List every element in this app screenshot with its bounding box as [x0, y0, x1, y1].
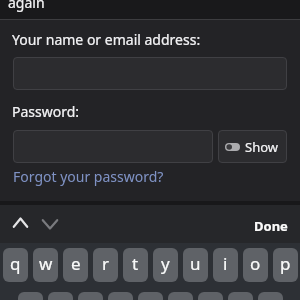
button[interactable] [138, 292, 163, 300]
button[interactable] [258, 292, 283, 300]
staticText: y [161, 252, 170, 275]
staticText: t [132, 252, 139, 275]
button[interactable] [13, 130, 213, 163]
button[interactable] [198, 292, 223, 300]
button[interactable] [18, 292, 43, 300]
button[interactable] [228, 292, 253, 300]
staticText: w [39, 252, 53, 275]
staticText: p [280, 252, 291, 275]
staticText: o [250, 252, 261, 275]
button[interactable]: Done [254, 217, 288, 235]
button[interactable]: t [123, 248, 148, 282]
staticText: i [223, 252, 228, 275]
button[interactable]: o [243, 248, 268, 282]
button[interactable]: i [213, 248, 238, 282]
button[interactable]: Show [218, 130, 287, 163]
staticText: e [71, 252, 81, 275]
staticText: Show [245, 138, 278, 156]
button[interactable]: w [33, 248, 58, 282]
button[interactable] [108, 292, 133, 300]
button[interactable]: y [153, 248, 178, 282]
button[interactable]: p [273, 248, 298, 282]
button[interactable]: e [63, 248, 88, 282]
button[interactable] [168, 292, 193, 300]
button[interactable] [48, 292, 73, 300]
staticText: u [190, 252, 201, 275]
button[interactable] [78, 292, 103, 300]
button[interactable]: r [93, 248, 118, 282]
staticText: r [102, 252, 110, 275]
button[interactable] [13, 217, 28, 228]
button[interactable] [13, 57, 287, 90]
button[interactable]: u [183, 248, 208, 282]
staticText: again [8, 0, 45, 12]
button[interactable]: Forgot your password? [13, 167, 164, 186]
staticText: Your name or email address: [12, 30, 201, 49]
button[interactable]: q [3, 248, 28, 282]
staticText: q [10, 252, 21, 275]
staticText: Password: [12, 102, 80, 121]
button[interactable] [42, 219, 58, 230]
